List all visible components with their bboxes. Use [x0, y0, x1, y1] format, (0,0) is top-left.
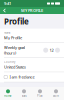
- button[interactable]: Country: [0, 58, 64, 72]
- staticText: 12: [50, 47, 54, 53]
- staticText: Plan: [37, 94, 43, 98]
- button[interactable]: Stats: [16, 87, 32, 100]
- staticText: Stats: [21, 94, 26, 98]
- button[interactable]: I am freelance: [0, 72, 64, 82]
- staticText: My Profile: [4, 35, 22, 40]
- staticText: More: [52, 94, 59, 98]
- staticText: Weekly goal (hours): [4, 45, 25, 55]
- button[interactable]: Increase: [55, 48, 60, 53]
- button[interactable]: Name: [0, 29, 64, 42]
- staticText: 9:41: [4, 1, 11, 6]
- staticText: I am freelance: [9, 74, 34, 80]
- staticText: Country: [4, 60, 15, 64]
- button[interactable]: More: [48, 87, 64, 100]
- button[interactable]: Back: [0, 7, 9, 14]
- staticText: Home: [4, 94, 12, 98]
- staticText: MY PROFILE: [21, 8, 43, 13]
- staticText: United States: [4, 64, 26, 69]
- button[interactable]: Plan: [32, 87, 48, 100]
- button[interactable]: Decrease: [43, 48, 48, 53]
- button[interactable]: Home: [0, 87, 16, 100]
- staticText: Name: [4, 31, 11, 34]
- staticText: Profile: [4, 16, 29, 27]
